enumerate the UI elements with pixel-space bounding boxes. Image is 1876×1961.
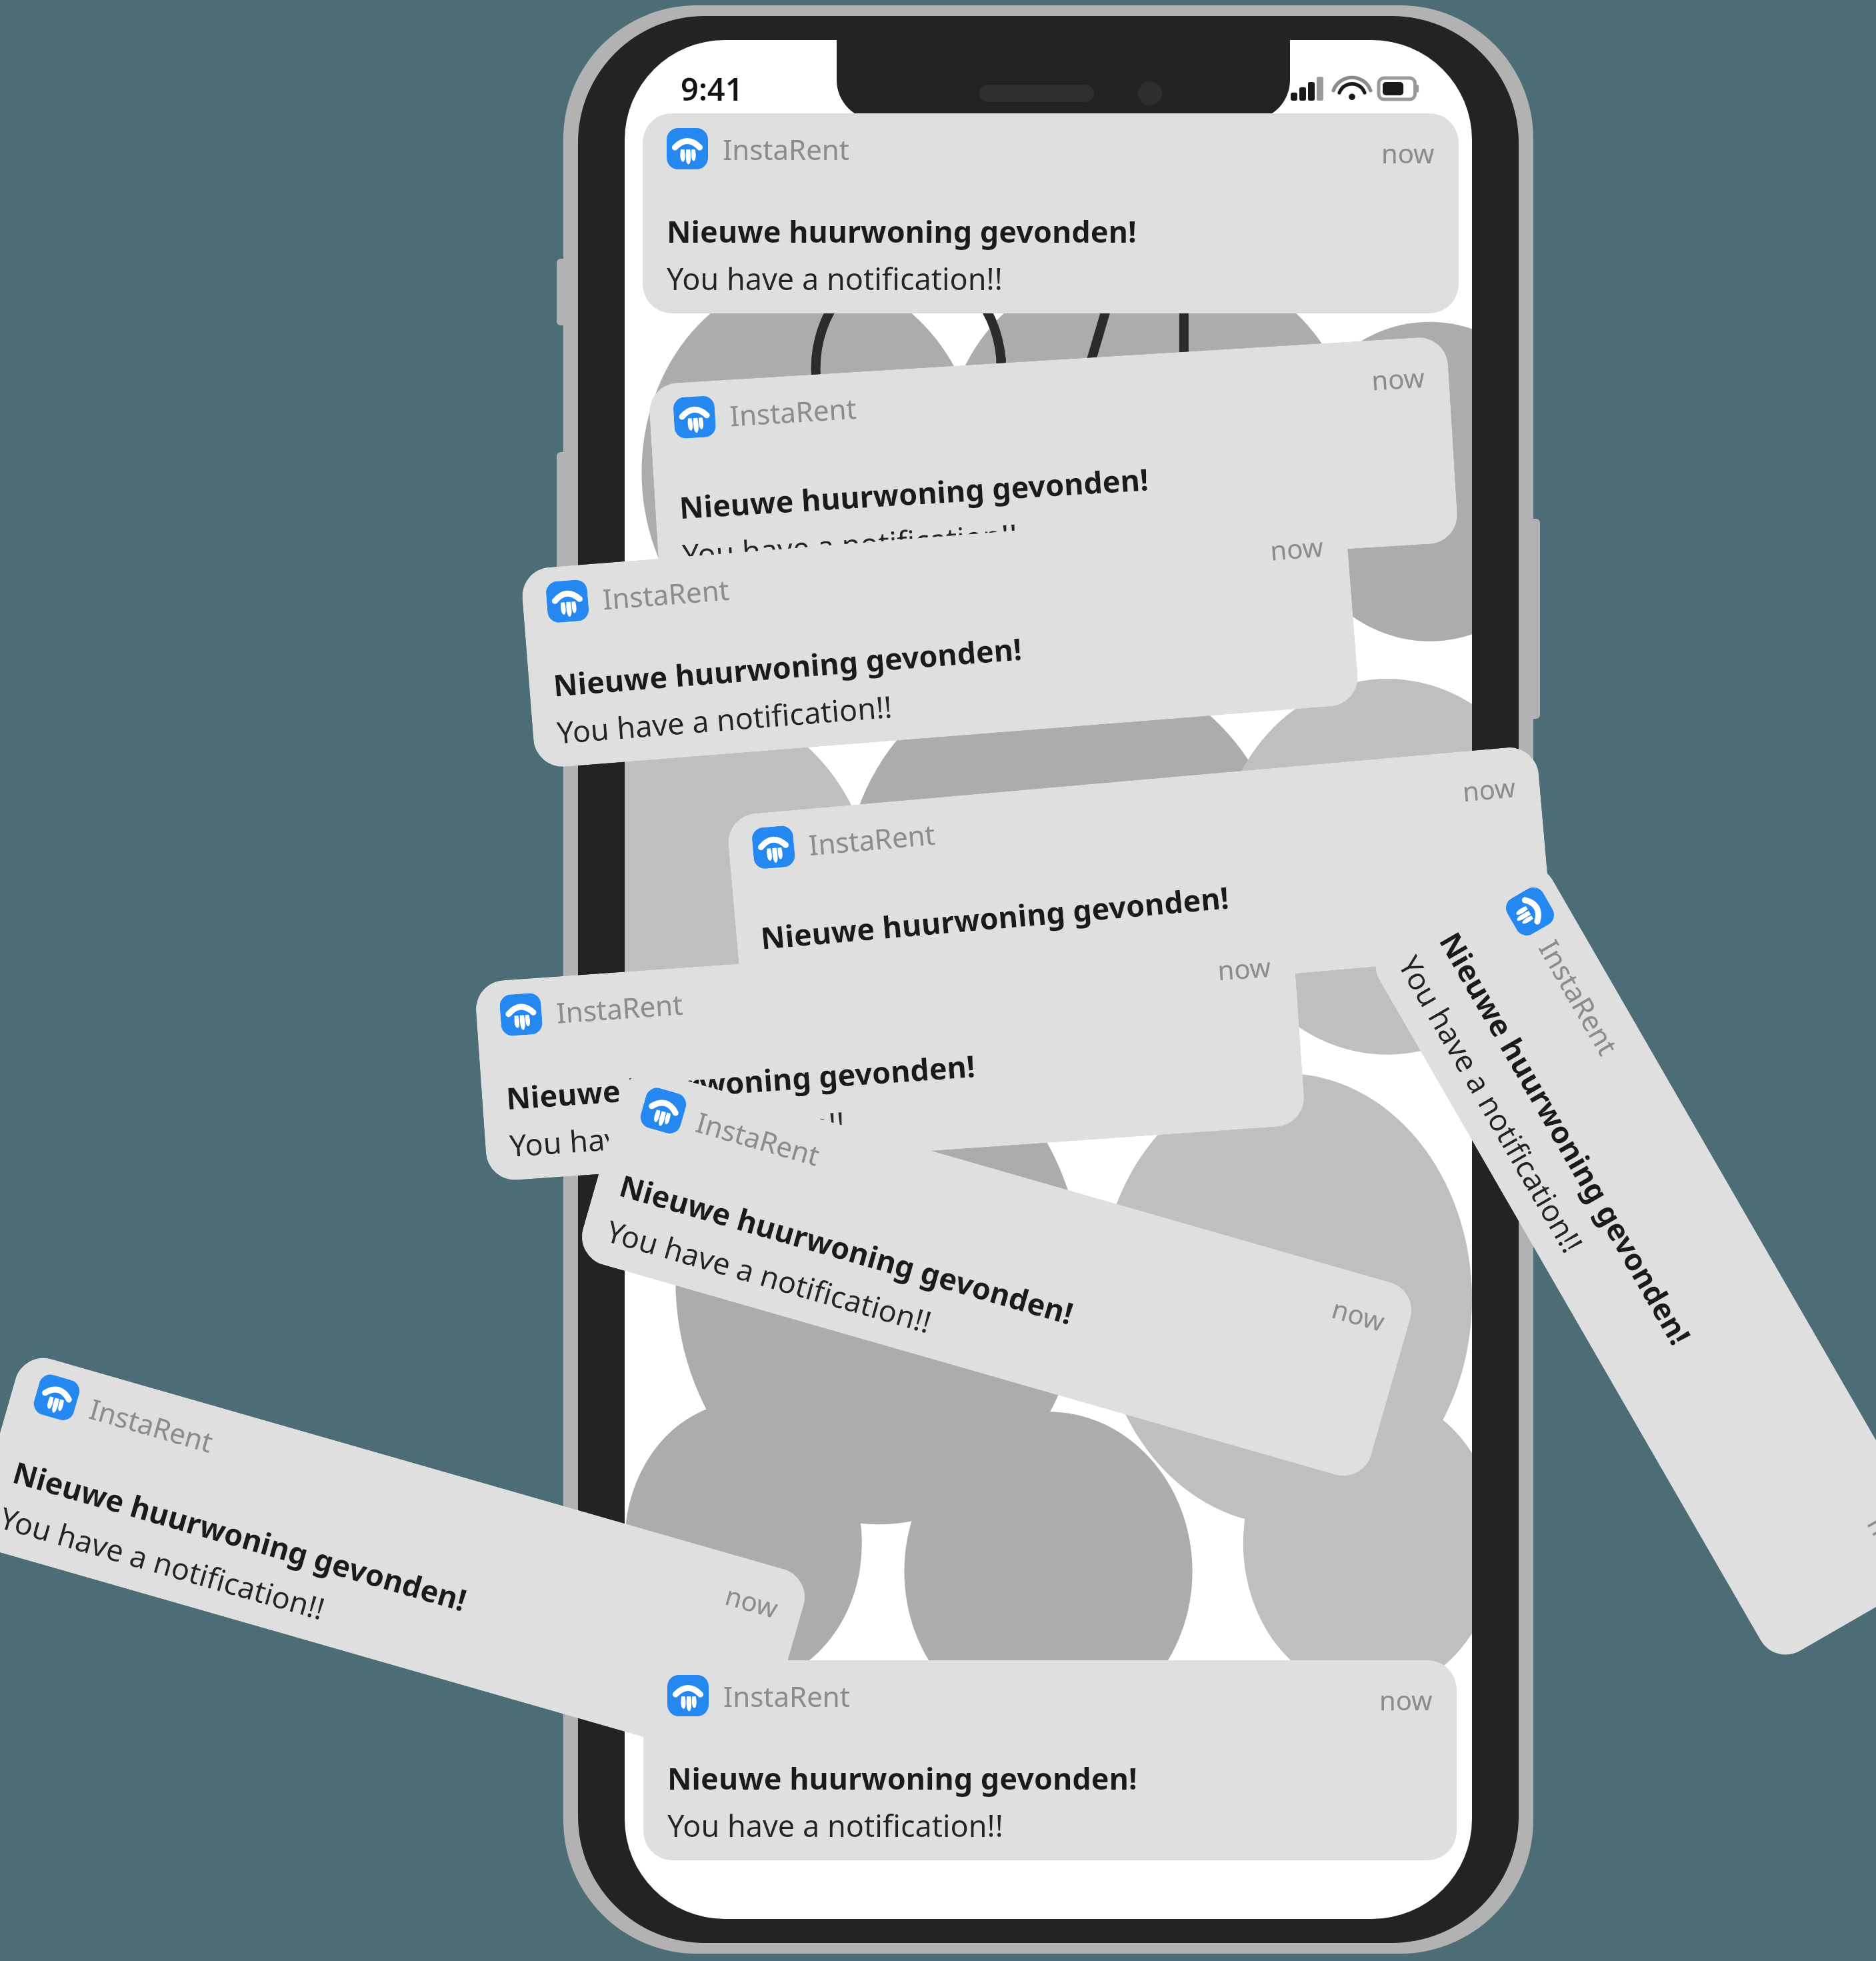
other: InstaRent app icon	[751, 825, 796, 870]
staticText: InstaRent	[85, 1389, 218, 1461]
button[interactable]: InstaRent app icon	[0, 1351, 812, 1769]
button[interactable]: InstaRent app icon	[726, 745, 1554, 1022]
staticText: now	[1461, 768, 1517, 809]
staticText: Nieuwe huurwoning gevonden!	[759, 877, 1231, 958]
staticText: You have a notification!!	[602, 1210, 936, 1342]
staticText: Nieuwe huurwoning gevonden!	[1431, 925, 1701, 1352]
staticText: InstaRent	[692, 1102, 824, 1174]
staticText: You have a notification!!	[667, 258, 1003, 299]
other: InstaRent app icon	[545, 579, 590, 624]
staticText: now	[1379, 1682, 1433, 1718]
staticText: now	[1370, 359, 1426, 398]
other: InstaRent app icon	[1502, 883, 1558, 940]
staticText: now	[1269, 528, 1325, 568]
staticText: Nieuwe huurwoning gevonden!	[667, 1758, 1137, 1798]
button[interactable]: InstaRent app icon	[643, 113, 1459, 313]
staticText: InstaRent	[723, 1677, 850, 1715]
other: InstaRent app icon	[673, 395, 716, 439]
button[interactable]: InstaRent app icon	[643, 1660, 1457, 1860]
other: InstaRent app icon	[499, 992, 543, 1037]
staticText: now	[1381, 135, 1435, 171]
staticText: now	[1216, 948, 1272, 988]
button[interactable]: InstaRent app icon	[1365, 855, 1876, 1665]
other: InstaRent app icon	[638, 1085, 689, 1136]
staticText: InstaRent	[1531, 933, 1627, 1061]
staticText: now	[1328, 1290, 1389, 1339]
staticText: You have a notification!!	[508, 1102, 846, 1166]
staticText: Nieuwe huurwoning gevonden!	[552, 628, 1023, 705]
staticText: InstaRent	[729, 389, 857, 434]
staticText: You have a notification!!	[681, 514, 1019, 575]
staticText: You have a notification!!	[667, 1805, 1003, 1846]
staticText: InstaRent	[807, 815, 936, 863]
staticText: You have a notification!!	[763, 935, 1101, 1005]
other: InstaRent app icon	[667, 1675, 709, 1716]
staticText: Nieuwe huurwoning gevonden!	[615, 1165, 1078, 1333]
button[interactable]: InstaRent app icon	[474, 925, 1306, 1182]
staticText: now	[722, 1576, 783, 1626]
button[interactable]: InstaRent app icon	[520, 505, 1360, 769]
staticText: Nieuwe huurwoning gevonden!	[8, 1451, 471, 1620]
staticText: You have a notification!!	[0, 1497, 330, 1629]
staticText: InstaRent	[601, 570, 730, 618]
staticText: now	[1860, 1509, 1876, 1573]
button[interactable]: InstaRent app icon	[575, 1064, 1418, 1483]
other: InstaRent app icon	[31, 1372, 82, 1423]
staticText: InstaRent	[555, 985, 684, 1031]
staticText: Nieuwe huurwoning gevonden!	[678, 458, 1150, 528]
staticText: 9:41	[681, 67, 743, 110]
staticText: Nieuwe huurwoning gevonden!	[505, 1045, 976, 1118]
other: InstaRent app icon	[667, 128, 708, 169]
staticText: You have a notification!!	[1390, 948, 1593, 1260]
button[interactable]: InstaRent app icon	[648, 336, 1459, 591]
staticText: InstaRent	[723, 130, 849, 168]
staticText: You have a notification!!	[555, 686, 894, 752]
staticText: Nieuwe huurwoning gevonden!	[667, 211, 1137, 251]
